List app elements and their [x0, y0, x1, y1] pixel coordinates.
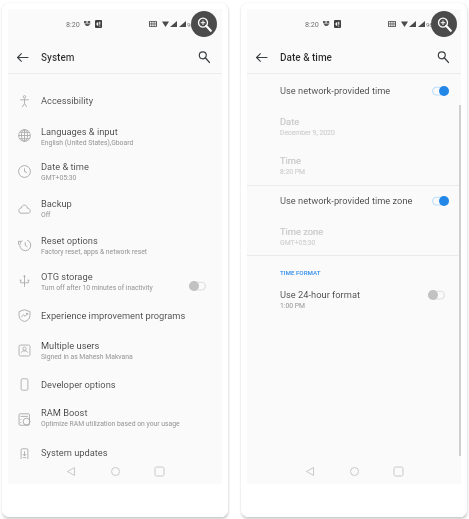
- staticText: Experience improvement programs: [41, 310, 186, 321]
- button[interactable]: Languages & input: [8, 126, 222, 162]
- button[interactable]: Search: [193, 46, 215, 68]
- staticText: TIME FORMAT: [280, 269, 321, 276]
- staticText: Time zone: [280, 226, 324, 237]
- staticText: GMT+05:30: [280, 239, 316, 247]
- staticText: Date: [280, 116, 300, 127]
- button[interactable]: Use 24-hour format: [247, 289, 461, 325]
- button[interactable]: Multiple users: [8, 340, 222, 376]
- staticText: Use network-provided time: [280, 85, 391, 96]
- staticText: English (United States),Gboard: [41, 139, 134, 147]
- button[interactable]: Developer options: [8, 379, 222, 409]
- button[interactable]: Search: [432, 46, 454, 68]
- staticText: RAM Boost: [41, 407, 88, 418]
- staticText: Languages & input: [41, 126, 118, 137]
- staticText: 96: [187, 21, 194, 28]
- staticText: Optimize RAM utilization based on your u…: [41, 420, 180, 428]
- button[interactable]: Zoom: [431, 11, 457, 37]
- staticText: Developer options: [41, 379, 116, 390]
- staticText: System updates: [41, 447, 108, 458]
- button[interactable]: RAM Boost: [8, 407, 222, 443]
- staticText: 8:20: [305, 20, 319, 28]
- button[interactable]: Date: [247, 116, 461, 152]
- button[interactable]: Reset options: [8, 235, 222, 271]
- staticText: 96: [426, 21, 433, 28]
- button[interactable]: Back: [11, 46, 33, 68]
- staticText: 1:00 PM: [280, 302, 306, 310]
- staticText: Reset options: [41, 235, 98, 246]
- staticText: Use 24-hour format: [280, 289, 361, 300]
- staticText: Signed in as Mahesh Makvana: [41, 353, 133, 361]
- button[interactable]: Date & time: [8, 161, 222, 197]
- button[interactable]: Accessibility: [8, 95, 222, 125]
- button[interactable]: Zoom: [191, 11, 217, 37]
- staticText: Date & time: [41, 161, 89, 172]
- staticText: 8:20 PM: [280, 168, 306, 176]
- button[interactable]: OTG storage: [8, 271, 222, 307]
- button[interactable]: Back: [250, 46, 272, 68]
- staticText: Multiple users: [41, 340, 100, 351]
- staticText: 8:20: [66, 20, 80, 28]
- staticText: December 9, 2020: [280, 129, 335, 137]
- staticText: Off: [41, 211, 51, 219]
- staticText: Backup: [41, 198, 72, 209]
- button[interactable]: Recents: [392, 465, 404, 477]
- staticText: Time: [280, 155, 301, 166]
- button[interactable]: Time zone: [247, 226, 461, 262]
- staticText: Accessibility: [41, 95, 94, 106]
- button[interactable]: Home: [348, 465, 360, 477]
- staticText: System: [41, 52, 75, 64]
- button[interactable]: Back: [65, 465, 77, 477]
- button[interactable]: Home: [109, 465, 121, 477]
- staticText: Use network-provided time zone: [280, 195, 413, 206]
- button[interactable]: Experience improvement programs: [8, 310, 222, 340]
- button[interactable]: Use network-provided time: [247, 85, 461, 115]
- button[interactable]: Time: [247, 155, 461, 191]
- button[interactable]: Back: [304, 465, 316, 477]
- staticText: GMT+05:30: [41, 174, 77, 182]
- staticText: Date & time: [280, 52, 332, 64]
- button[interactable]: System updates: [8, 447, 222, 477]
- staticText: Factory reset, apps & network reset: [41, 248, 148, 256]
- staticText: OTG storage: [41, 271, 93, 282]
- button[interactable]: Use network-provided time zone: [247, 195, 461, 225]
- button[interactable]: Recents: [153, 465, 165, 477]
- staticText: Turn off after 10 minutes of inactivity: [41, 284, 153, 292]
- button[interactable]: Backup: [8, 198, 222, 234]
